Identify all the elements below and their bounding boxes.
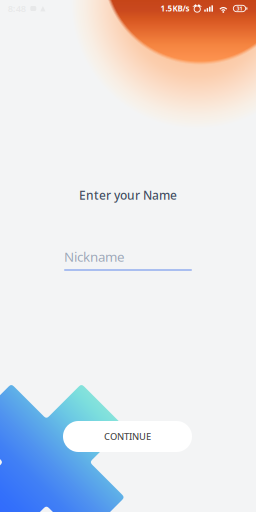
- staticText: 1.5KB/s: [160, 3, 189, 14]
- staticText: 31: [236, 5, 242, 12]
- staticText: Nickname: [64, 248, 125, 265]
- staticText: Enter your Name: [79, 187, 177, 203]
- staticText: CONTINUE: [104, 430, 151, 443]
- staticText: 8:48: [8, 2, 26, 15]
- button[interactable]: CONTINUE: [63, 421, 192, 452]
